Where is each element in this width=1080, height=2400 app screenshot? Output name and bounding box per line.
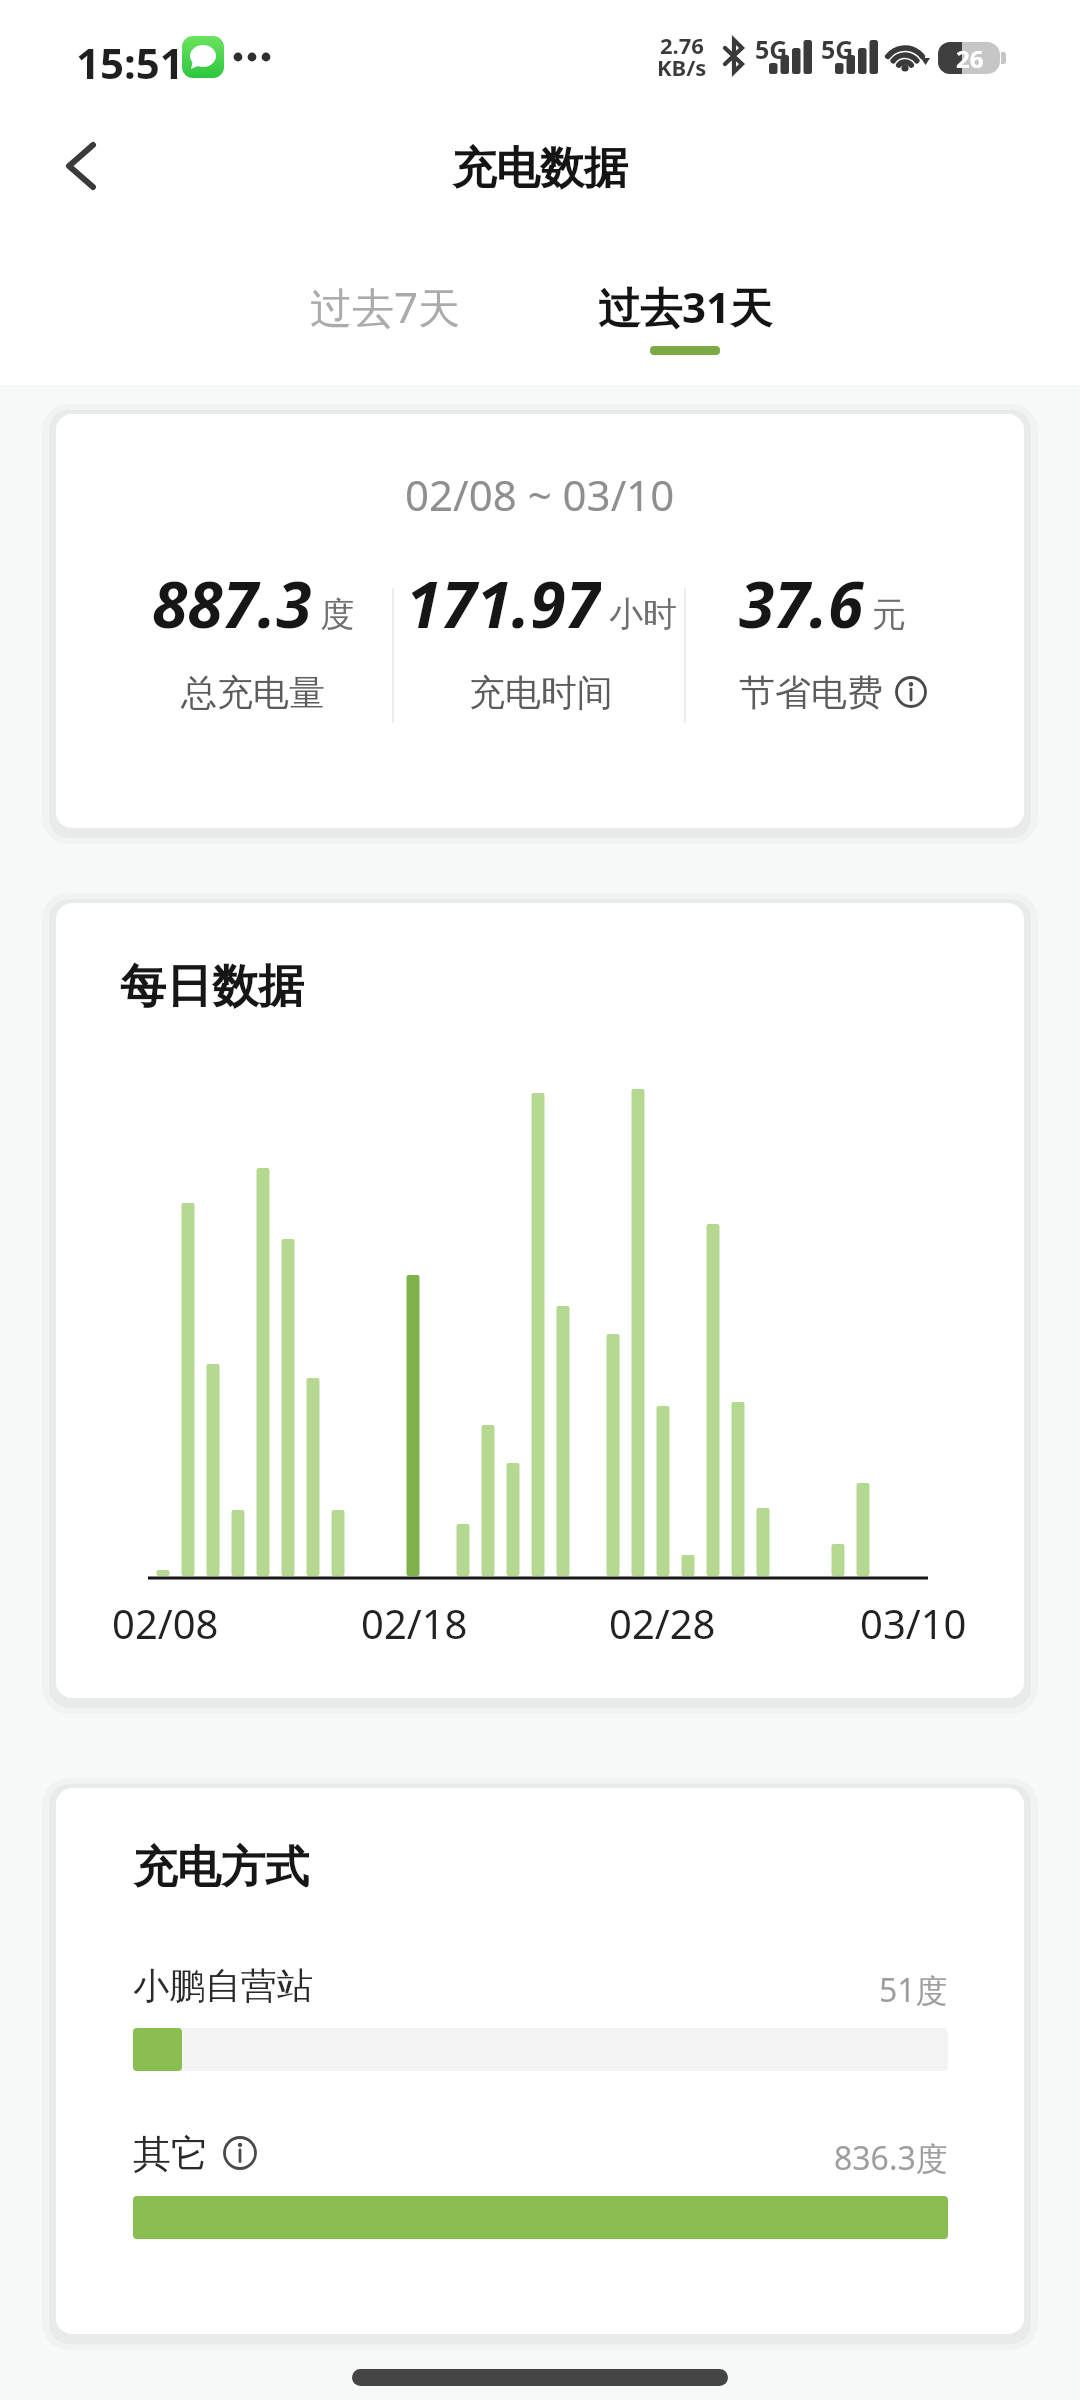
staticText: 度 xyxy=(320,593,354,636)
staticText: 51度 xyxy=(879,1968,948,2008)
staticText: 887.3 xyxy=(152,560,312,644)
staticText: 5G xyxy=(821,32,854,60)
staticText: 37.6 xyxy=(739,560,864,644)
staticText: 充电方式 xyxy=(133,1840,309,1892)
staticText: 过去7天 xyxy=(310,278,461,332)
staticText: 元 xyxy=(872,593,906,636)
staticText: 充电时间 xyxy=(469,670,613,714)
staticText: 26 xyxy=(956,42,984,74)
staticText: 过去31天 xyxy=(598,278,773,332)
staticText: 每日数据 xyxy=(120,958,304,1010)
staticText: KB/s xyxy=(657,52,707,76)
staticText: 2.76 xyxy=(660,30,704,54)
staticText: 总充电量 xyxy=(181,670,325,714)
staticText: 15:51 xyxy=(76,34,184,80)
staticText: 小鹏自营站 xyxy=(133,1963,313,2008)
staticText: 02/18 xyxy=(361,1596,468,1642)
staticText: 5G xyxy=(755,32,788,60)
staticText: 02/08 xyxy=(112,1596,219,1642)
staticText: 03/10 xyxy=(860,1596,967,1642)
staticText: 节省电费 xyxy=(739,670,883,714)
staticText: 02/28 xyxy=(609,1596,716,1642)
staticText: 02/08 ~ 03/10 xyxy=(405,466,675,514)
staticText: 其它 xyxy=(133,2130,209,2176)
staticText: 171.97 xyxy=(406,560,601,644)
staticText: 充电数据 xyxy=(452,141,628,196)
staticText: 836.3度 xyxy=(834,2136,948,2176)
staticText: 小时 xyxy=(609,593,677,636)
